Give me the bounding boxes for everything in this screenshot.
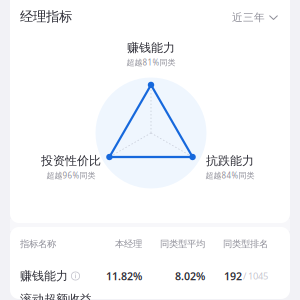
staticText: 192 [224,269,242,283]
staticText: 本经理 [115,238,142,250]
staticText: 超越84%同类 [205,170,254,181]
staticText: 同类型平均 [160,238,205,250]
button[interactable]: 近三年 [227,6,283,29]
staticText: 超越96%同类 [46,170,95,181]
staticText: 滚动超额收益 [20,292,92,300]
staticText: 赚钱能力 [127,40,175,55]
staticText: / 1045 [243,270,268,282]
button[interactable]: 赚钱能力 [20,267,268,285]
staticText: 8.02% [175,269,205,283]
staticText: 指标名称 [20,238,56,250]
staticText: 投资性价比 [41,153,101,168]
staticText: 近三年 [232,11,265,24]
staticText: 同类型排名 [223,238,268,250]
staticText: 经理指标 [20,8,72,25]
staticText: 11.82% [106,269,142,283]
staticText: 抗跌能力 [206,153,254,168]
staticText: 超越81%同类 [126,57,175,68]
staticText: 赚钱能力 [20,269,68,283]
